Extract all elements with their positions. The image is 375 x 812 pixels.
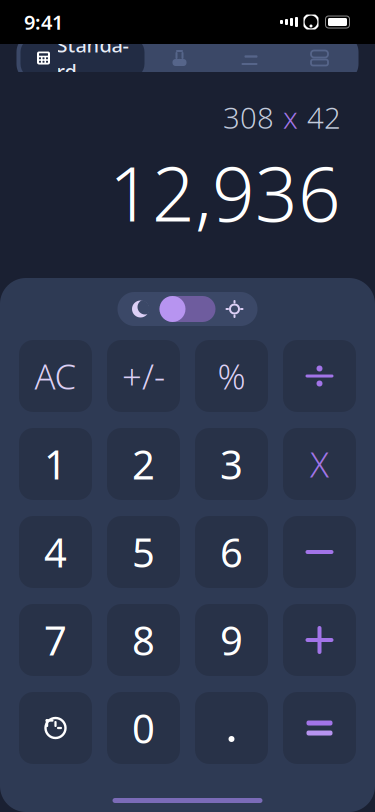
staticText: 8 — [132, 613, 155, 666]
staticText: AC — [34, 353, 76, 399]
button[interactable]: Converter — [284, 38, 354, 78]
staticText: 4 — [44, 525, 67, 578]
staticText: 1 — [44, 437, 67, 490]
button[interactable]: 8 — [107, 604, 180, 676]
button[interactable]: ÷ — [283, 340, 356, 412]
button[interactable]: Graphing — [214, 38, 284, 78]
button[interactable]: History — [19, 692, 92, 764]
button[interactable]: 0 — [107, 692, 180, 764]
staticText: X — [310, 441, 329, 487]
staticText: 42 — [307, 98, 341, 137]
button[interactable]: +/- — [107, 340, 180, 412]
button[interactable]: Standard — [20, 38, 144, 78]
button[interactable]: 5 — [107, 516, 180, 588]
button[interactable]: Scientific — [144, 38, 214, 78]
staticText: 6 — [220, 525, 243, 578]
button[interactable]: % — [195, 340, 268, 412]
staticText: 9:41 — [24, 9, 63, 35]
button[interactable]: 3 — [195, 428, 268, 500]
staticText: +/- — [122, 353, 165, 399]
staticText: 3 — [220, 437, 243, 490]
staticText: 0 — [132, 701, 155, 754]
staticText: % — [217, 353, 245, 399]
button[interactable]: 2 — [107, 428, 180, 500]
button[interactable]: 1 — [19, 428, 92, 500]
button[interactable]: — — [283, 516, 356, 588]
button[interactable]: 9 — [195, 604, 268, 676]
staticText: 12,936 — [109, 143, 341, 242]
button[interactable]: 6 — [195, 516, 268, 588]
button[interactable]: 4 — [19, 516, 92, 588]
button[interactable]: Toggle appearance — [117, 292, 257, 326]
button[interactable]: = — [283, 692, 356, 764]
staticText: 7 — [44, 613, 67, 666]
button[interactable]: + — [283, 604, 356, 676]
staticText: 5 — [132, 525, 155, 578]
staticText: Standard — [56, 31, 128, 84]
button[interactable]: 7 — [19, 604, 92, 676]
staticText: 2 — [132, 437, 155, 490]
staticText: 308 — [223, 98, 274, 137]
button[interactable]: X — [283, 428, 356, 500]
staticText: x — [283, 98, 298, 137]
button[interactable]: . — [195, 692, 268, 764]
button[interactable]: AC — [19, 340, 92, 412]
staticText: 9 — [220, 613, 243, 666]
